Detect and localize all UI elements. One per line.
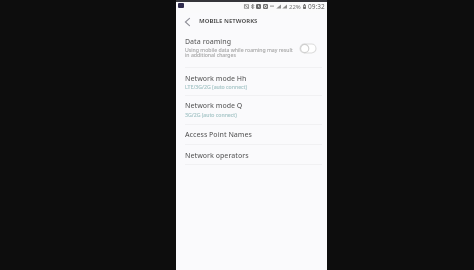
staticText: 3G/2G (auto connect): [185, 111, 237, 118]
button[interactable]: Data roaming toggle: [300, 44, 316, 53]
staticText: Access Point Names: [185, 130, 252, 140]
button[interactable]: Network operators: [176, 145, 327, 165]
staticText: LTE/3G/2G (auto connect): [185, 83, 247, 90]
button[interactable]: Back: [179, 14, 195, 30]
staticText: Data roaming: [185, 37, 231, 47]
staticText: 22%: [289, 3, 301, 11]
button[interactable]: Data roaming: [176, 35, 327, 59]
staticText: 09:32: [308, 2, 325, 11]
staticText: Using mobile data while roaming may resu…: [185, 46, 293, 53]
button[interactable]: Network mode Hh: [176, 68, 327, 97]
button[interactable]: Network mode Q: [176, 96, 327, 124]
staticText: Network mode Hh: [185, 74, 247, 84]
staticText: Network mode Q: [185, 101, 243, 111]
staticText: MOBILE NETWORKS: [199, 17, 258, 25]
staticText: Network operators: [185, 151, 249, 161]
button[interactable]: Access Point Names: [176, 125, 327, 145]
staticText: in additional charges: [185, 51, 236, 58]
